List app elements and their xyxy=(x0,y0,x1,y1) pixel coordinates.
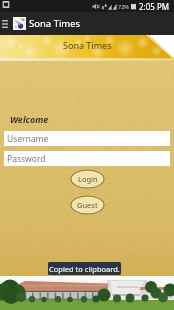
staticText: Sona Times xyxy=(63,39,112,51)
staticText: Sona Times xyxy=(29,17,81,30)
staticText: 2:05 PM xyxy=(139,1,170,12)
staticText: Welcome xyxy=(10,113,49,125)
staticText: Username xyxy=(7,133,49,145)
staticText: Login xyxy=(78,174,98,184)
staticText: Copied to clipboard. xyxy=(49,264,120,274)
button[interactable]: Login xyxy=(71,170,104,188)
staticText: 72% xyxy=(118,3,129,10)
button[interactable]: Guest xyxy=(71,196,104,214)
button[interactable]: Password xyxy=(4,151,170,166)
staticText: Password xyxy=(7,153,46,165)
button[interactable]: Username xyxy=(4,131,170,146)
staticText: Guest xyxy=(77,200,98,210)
button[interactable]: Sona Times logo xyxy=(13,17,26,30)
button[interactable]: Open navigation menu xyxy=(0,12,9,35)
